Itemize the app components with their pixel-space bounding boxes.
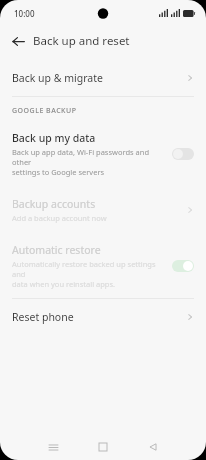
staticText: Add a backup account now (12, 213, 107, 223)
button[interactable]: Back (7, 30, 29, 52)
staticText: Back up and reset (33, 33, 130, 49)
staticText: Back up & migrate (12, 71, 103, 85)
staticText: Back up app data, Wi-Fi passwords and ot… (12, 147, 164, 177)
staticText: Reset phone (12, 310, 74, 324)
staticText: Backup accounts (12, 197, 96, 211)
button[interactable]: Back (128, 434, 178, 460)
staticText: Automatic restore (12, 243, 101, 257)
staticText: Automatically restore backed up settings… (12, 259, 164, 289)
staticText: GOOGLE BACKUP (12, 106, 77, 116)
button[interactable]: Home (78, 434, 128, 460)
button[interactable]: Toggle (172, 148, 194, 160)
button[interactable]: Recent apps (28, 434, 78, 460)
button[interactable]: Back up & migrate (0, 60, 206, 96)
button[interactable]: Back up my data (0, 122, 206, 186)
staticText: Back up my data (12, 131, 96, 145)
button[interactable]: Toggle (172, 260, 194, 272)
button[interactable]: Backup accounts (0, 186, 206, 234)
staticText: 10:00 (14, 8, 35, 19)
button[interactable]: Automatic restore (0, 234, 206, 298)
button[interactable]: Reset phone (0, 299, 206, 335)
